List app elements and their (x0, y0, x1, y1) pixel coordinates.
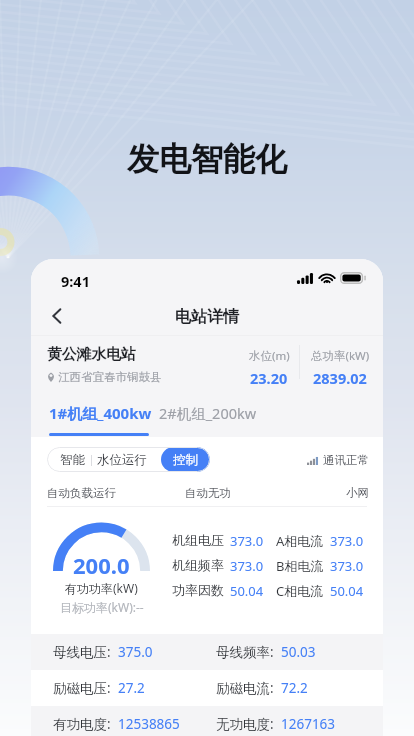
staticText: 50.04 (230, 582, 264, 600)
staticText: A相电流 (276, 532, 324, 550)
staticText: C相电流 (276, 582, 324, 600)
button[interactable]: 1#机组_400kw (43, 398, 158, 428)
button[interactable]: 返回 (43, 302, 71, 330)
staticText: 发电智能化 (127, 139, 287, 179)
staticText: B相电流 (276, 557, 324, 575)
staticText: 黄公滩水电站 (47, 345, 136, 364)
staticText: 目标功率(kW):-- (60, 599, 144, 615)
staticText: 水位(m) (249, 348, 290, 364)
staticText: 通讯正常 (323, 453, 369, 467)
staticText: 自动无功 (185, 486, 231, 500)
staticText: 有功功率(kW) (65, 580, 138, 596)
staticText: 12538865 (118, 715, 180, 733)
staticText: 373.0 (230, 532, 264, 550)
staticText: 2#机组_200kw (159, 403, 257, 423)
staticText: 无功电度: (216, 715, 274, 733)
staticText: 9:41 (61, 271, 90, 291)
staticText: 373.0 (330, 557, 364, 575)
staticText: 50.04 (330, 582, 364, 600)
staticText: 母线频率: (216, 643, 274, 661)
staticText: 有功电度: (53, 715, 111, 733)
staticText: 江西省宜春市铜鼓县 (58, 370, 162, 384)
staticText: 2839.02 (313, 368, 367, 388)
staticText: 机组电压 (172, 532, 224, 548)
staticText: 50.03 (281, 643, 316, 661)
button[interactable]: 2#机组_200kw (153, 398, 263, 428)
staticText: 总功率(kW) (311, 348, 370, 364)
button[interactable]: 励磁电压: (31, 670, 383, 706)
staticText: 1267163 (281, 715, 336, 733)
staticText: 励磁电压: (53, 679, 111, 697)
button[interactable]: 有功电度: (31, 706, 383, 736)
staticText: 控制 (173, 452, 198, 468)
staticText: 自动负载运行 (47, 486, 116, 500)
staticText: 27.2 (118, 679, 145, 697)
button[interactable]: 母线电压: (31, 634, 383, 670)
staticText: 功率因数 (172, 582, 224, 598)
staticText: 励磁电流: (216, 679, 274, 697)
staticText: 1#机组_400kw (49, 403, 152, 423)
staticText: 机组频率 (172, 557, 224, 573)
staticText: 23.20 (250, 368, 288, 388)
staticText: 母线电压: (53, 643, 111, 661)
staticText: 水位运行 (97, 452, 147, 468)
button[interactable]: 智能 (47, 447, 210, 472)
staticText: 小网 (346, 486, 369, 500)
staticText: 72.2 (281, 679, 308, 697)
staticText: 375.0 (118, 643, 153, 661)
staticText: 智能 (60, 452, 85, 468)
staticText: 373.0 (330, 532, 364, 550)
staticText: 373.0 (230, 557, 264, 575)
staticText: 电站详情 (175, 307, 239, 327)
staticText: 200.0 (73, 550, 130, 580)
